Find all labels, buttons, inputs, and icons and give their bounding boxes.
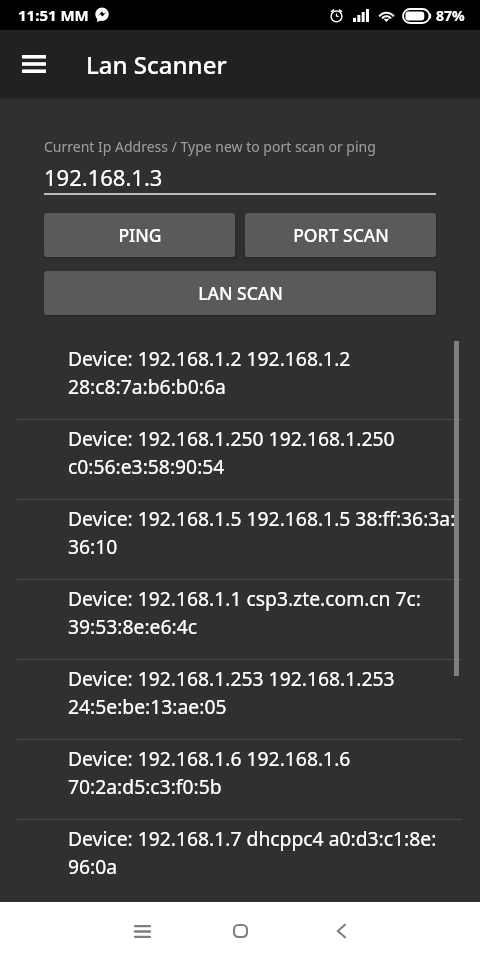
button[interactable]: Home (211, 902, 269, 960)
staticText: Device: 192.168.1.5 192.168.1.5 38:ff:36… (68, 505, 456, 560)
button[interactable]: PORT SCAN (245, 213, 436, 257)
staticText: PORT SCAN (293, 223, 389, 247)
button[interactable]: Device: 192.168.1.250 192.168.1.250 c0:5… (0, 420, 480, 500)
button[interactable]: Device: 192.168.1.2 192.168.1.2 28:c8:7a… (0, 340, 480, 420)
staticText: PING (118, 223, 162, 247)
staticText: LAN SCAN (198, 281, 283, 305)
button[interactable]: Back (312, 902, 370, 960)
button[interactable]: LAN SCAN (44, 271, 436, 315)
staticText: 11:51 MM (18, 5, 89, 25)
staticText: Device: 192.168.1.1 csp3.zte.com.cn 7c: … (68, 585, 422, 640)
button[interactable]: PING (44, 213, 235, 257)
staticText: Lan Scanner (86, 48, 227, 81)
staticText: Device: 192.168.1.250 192.168.1.250 c0:5… (68, 425, 395, 480)
staticText: 192.168.1.3 (44, 162, 163, 192)
staticText: Device: 192.168.1.7 dhcppc4 a0:d3:c1:8e:… (68, 825, 437, 880)
button[interactable]: Menu (10, 40, 58, 88)
staticText: Device: 192.168.1.6 192.168.1.6 70:2a:d5… (68, 745, 351, 800)
button[interactable]: Device: 192.168.1.5 192.168.1.5 38:ff:36… (0, 500, 480, 580)
button[interactable]: Device: 192.168.1.6 192.168.1.6 70:2a:d5… (0, 740, 480, 820)
staticText: Current Ip Address / Type new to port sc… (44, 137, 376, 156)
staticText: Device: 192.168.1.253 192.168.1.253 24:5… (68, 665, 395, 720)
button[interactable]: Recent apps (113, 902, 171, 960)
button[interactable]: Device: 192.168.1.253 192.168.1.253 24:5… (0, 660, 480, 740)
staticText: 87% (436, 6, 465, 25)
staticText: Device: 192.168.1.2 192.168.1.2 28:c8:7a… (68, 345, 351, 400)
button[interactable]: Device: 192.168.1.1 csp3.zte.com.cn 7c: … (0, 580, 480, 660)
button[interactable]: Device: 192.168.1.7 dhcppc4 a0:d3:c1:8e:… (0, 820, 480, 900)
